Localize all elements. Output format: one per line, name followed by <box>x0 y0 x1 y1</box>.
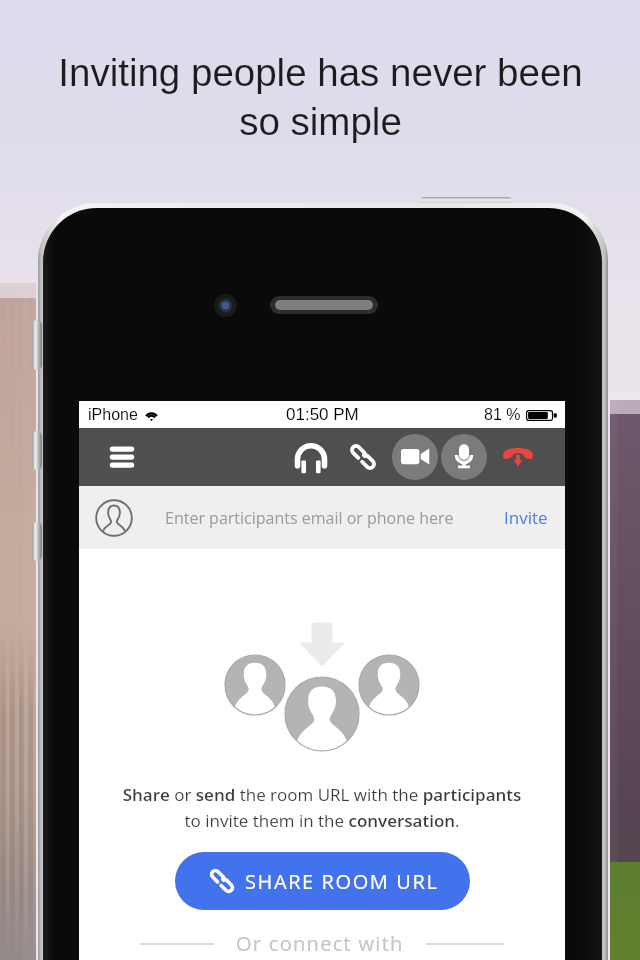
staticText: Or connect with <box>236 930 404 957</box>
button[interactable]: Microphone <box>441 434 487 480</box>
button[interactable]: Hang up <box>495 434 541 480</box>
staticText: SHARE ROOM URL <box>245 868 439 895</box>
staticText: Enter participants email or phone here <box>165 507 454 529</box>
staticText: Share or send the room URL with the part… <box>79 783 565 832</box>
staticText: 01:50 PM <box>286 405 359 424</box>
button[interactable]: Invite <box>488 490 565 545</box>
staticText: Invite <box>504 506 548 529</box>
button[interactable]: SHARE ROOM URL <box>175 852 470 910</box>
button[interactable]: Camera <box>392 434 438 480</box>
button[interactable]: Menu <box>100 435 144 479</box>
staticText: Inviting people has never been so simple <box>58 51 583 143</box>
button[interactable]: Copy link <box>342 436 384 478</box>
button[interactable]: Audio only <box>289 435 333 479</box>
staticText: iPhone <box>88 406 138 424</box>
staticText: 81 % <box>484 406 521 424</box>
